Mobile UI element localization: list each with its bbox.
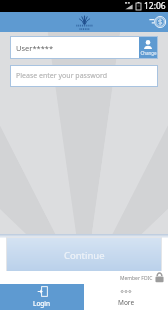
staticText: Continue (64, 249, 105, 262)
button[interactable]: User***** (10, 36, 158, 59)
button[interactable]: More (84, 284, 168, 310)
button[interactable]: Please enter your password (10, 65, 158, 87)
staticText: Please enter your password (16, 71, 108, 81)
button[interactable]: Continue (7, 238, 161, 272)
staticText: Member FDIC (120, 275, 153, 282)
button[interactable]: Login (0, 284, 84, 310)
staticText: More (118, 298, 135, 307)
staticText: Login (33, 299, 51, 308)
staticText: 12:06 (144, 0, 166, 12)
staticText: User***** (16, 43, 138, 53)
button[interactable]: Change (139, 37, 157, 58)
button[interactable]: Rates (148, 13, 166, 31)
staticText: Change (140, 50, 157, 56)
